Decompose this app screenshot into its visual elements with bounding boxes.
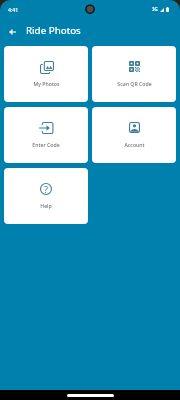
staticText: Enter Code	[32, 141, 60, 148]
button[interactable]: My Photos	[4, 46, 88, 102]
staticText: My Photos	[33, 80, 60, 87]
staticText: Help	[40, 202, 52, 209]
staticText: Ride Photos	[26, 24, 81, 37]
staticText: Scan QR Code	[117, 80, 152, 87]
staticText: 4:41	[8, 6, 19, 13]
staticText: ?	[44, 183, 48, 195]
staticText: Account	[124, 141, 145, 148]
button[interactable]: Scan QR Code	[92, 46, 176, 102]
button[interactable]: ?	[4, 168, 88, 224]
button[interactable]: Account	[92, 107, 176, 163]
button[interactable]: Enter Code	[4, 107, 88, 163]
button[interactable]: Back	[5, 23, 19, 37]
staticText: 3G	[152, 6, 158, 12]
